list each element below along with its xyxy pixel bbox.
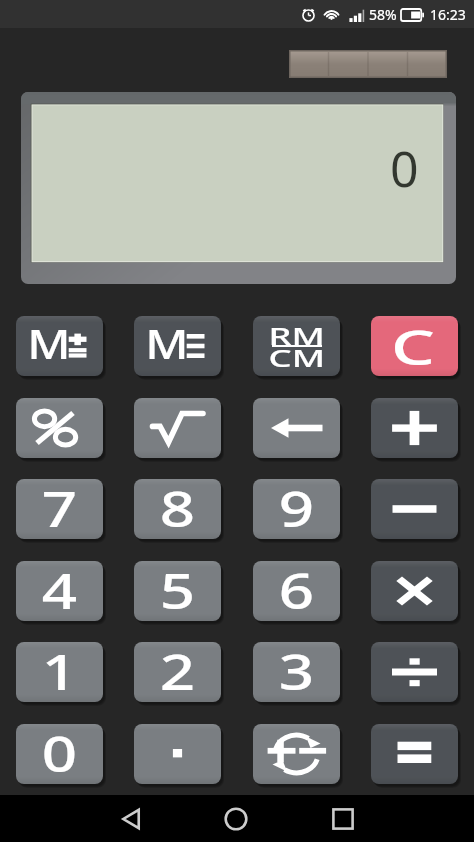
staticText: 3 xyxy=(278,642,315,698)
staticText: 0 xyxy=(41,724,78,780)
button[interactable]: 0 xyxy=(16,724,103,784)
button[interactable]: 4 xyxy=(16,561,103,621)
button[interactable]: Memory recall xyxy=(134,316,221,376)
button[interactable]: Decimal point xyxy=(134,724,221,784)
staticText: 16:23 xyxy=(430,5,466,24)
button[interactable]: Divide xyxy=(371,642,458,702)
button[interactable]: Percent xyxy=(16,398,103,458)
staticText: 8 xyxy=(159,479,196,535)
button[interactable]: Recall memory clear memory xyxy=(253,316,340,376)
button[interactable]: 2 xyxy=(134,642,221,702)
button[interactable]: 1 xyxy=(16,642,103,702)
button[interactable]: Backspace xyxy=(253,398,340,458)
button[interactable]: Clear xyxy=(371,316,458,376)
staticText: C xyxy=(391,316,435,375)
button[interactable]: Equals xyxy=(371,724,458,784)
staticText: 58% xyxy=(369,5,397,24)
staticText: CM xyxy=(269,342,325,373)
staticText: 4 xyxy=(41,561,78,617)
staticText: M xyxy=(145,317,189,370)
staticText: 7 xyxy=(41,479,78,535)
button[interactable]: Plus xyxy=(371,398,458,458)
button[interactable]: Memory plus minus xyxy=(16,316,103,376)
button[interactable]: Multiply xyxy=(371,561,458,621)
button[interactable]: 7 xyxy=(16,479,103,539)
button[interactable]: 3 xyxy=(253,642,340,702)
staticText: RM xyxy=(269,320,325,351)
button[interactable]: Minus xyxy=(371,479,458,539)
button[interactable]: Square root xyxy=(134,398,221,458)
staticText: 1 xyxy=(41,642,78,698)
staticText: 5 xyxy=(159,561,196,617)
button[interactable]: Back xyxy=(110,795,154,842)
button[interactable]: 5 xyxy=(134,561,221,621)
button[interactable]: 9 xyxy=(253,479,340,539)
staticText: 2 xyxy=(159,642,196,698)
staticText: M xyxy=(27,317,71,370)
button[interactable]: Home xyxy=(214,795,258,842)
button[interactable]: Recent apps xyxy=(321,795,365,842)
button[interactable]: 6 xyxy=(253,561,340,621)
button[interactable]: Sign change xyxy=(253,724,340,784)
staticText: 9 xyxy=(278,479,315,535)
button[interactable]: 8 xyxy=(134,479,221,539)
staticText: 6 xyxy=(278,561,315,617)
staticText: 0 xyxy=(390,134,419,202)
